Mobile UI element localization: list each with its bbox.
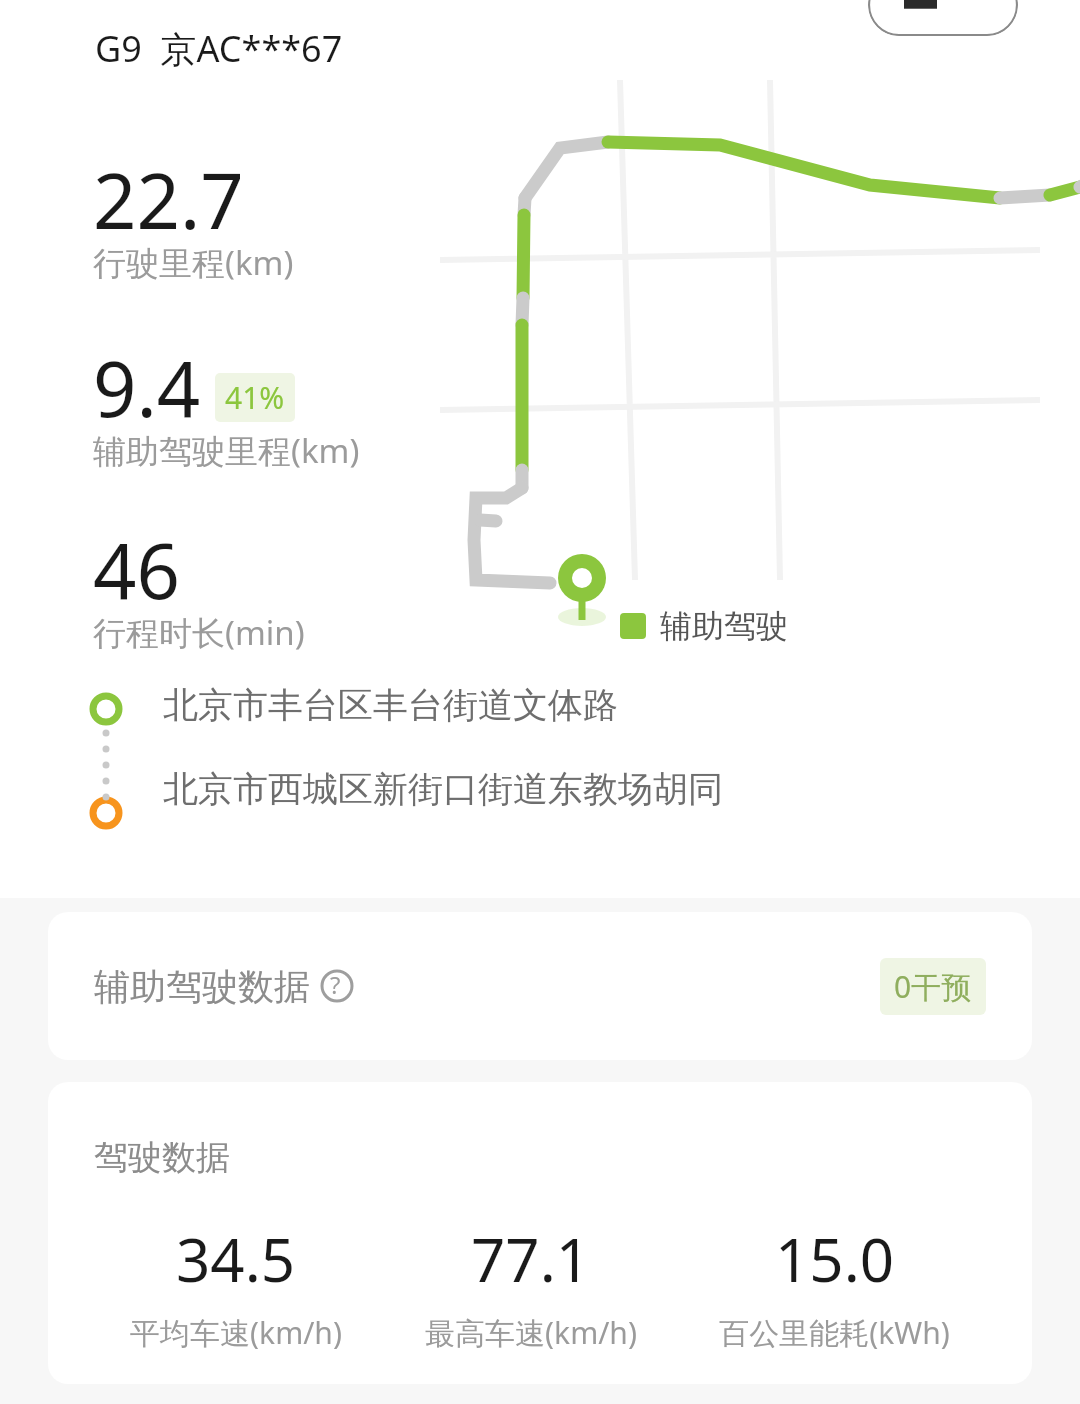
staticText: 辅助驾驶	[660, 606, 788, 646]
staticText: 平均车速(km/h)	[130, 1312, 342, 1353]
other: Help	[320, 969, 354, 1003]
staticText: 0干预	[894, 966, 972, 1007]
staticText: 15.0	[775, 1218, 895, 1300]
staticText: 驾驶数据	[94, 1136, 230, 1179]
staticText: 辅助驾驶数据	[94, 964, 310, 1009]
staticText: 北京市丰台区丰台街道文体路	[163, 683, 618, 727]
staticText: 辅助驾驶里程(km)	[93, 428, 360, 473]
button[interactable]: 辅助驾驶数据	[48, 912, 1032, 1060]
staticText: 9.4	[93, 336, 201, 440]
button[interactable]: Share	[868, 0, 1018, 36]
button[interactable]: 驾驶数据	[48, 1082, 1032, 1384]
staticText: 22.7	[93, 148, 244, 252]
staticText: 最高车速(km/h)	[425, 1312, 637, 1353]
staticText: ?	[330, 968, 341, 1001]
staticText: 34.5	[176, 1218, 296, 1300]
staticText: 行程时长(min)	[93, 610, 305, 655]
staticText: 46	[93, 518, 180, 622]
staticText: 77.1	[471, 1218, 591, 1300]
button[interactable]: 辅助驾驶	[620, 606, 788, 646]
staticText: 行驶里程(km)	[93, 240, 294, 285]
staticText: 百公里能耗(kWh)	[719, 1312, 950, 1353]
staticText: 41%	[225, 377, 285, 418]
staticText: 北京市西城区新街口街道东教场胡同	[163, 767, 723, 811]
staticText: G9 京AC***67	[95, 24, 343, 73]
